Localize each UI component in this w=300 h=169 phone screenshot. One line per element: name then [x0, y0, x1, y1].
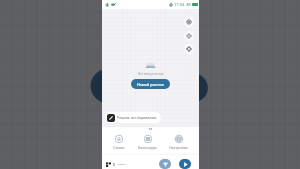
- button[interactable]: My location: [184, 44, 194, 54]
- button[interactable]: Новый участок: [131, 79, 170, 89]
- button[interactable]: Схемы: [112, 135, 126, 150]
- staticText: 0: [113, 162, 116, 167]
- staticText: Схемы: [113, 145, 125, 150]
- staticText: Настройки: [169, 145, 188, 150]
- staticText: Новый участок: [137, 82, 164, 87]
- button[interactable]: Tools: [159, 159, 171, 169]
- staticText: 17:54: [174, 2, 185, 7]
- staticText: Режим исследования: [117, 115, 157, 120]
- button[interactable]: Play: [179, 159, 191, 169]
- staticText: Нет пока участков: [138, 72, 164, 76]
- button[interactable]: Режим исследования: [105, 112, 161, 123]
- button[interactable]: Настройки: [168, 135, 189, 150]
- button[interactable]: Compass: [184, 31, 194, 41]
- staticText: Календарь: [138, 145, 157, 150]
- staticText: 48: [186, 2, 191, 7]
- button[interactable]: Календарь: [137, 135, 158, 150]
- button[interactable]: Layers: [184, 17, 194, 27]
